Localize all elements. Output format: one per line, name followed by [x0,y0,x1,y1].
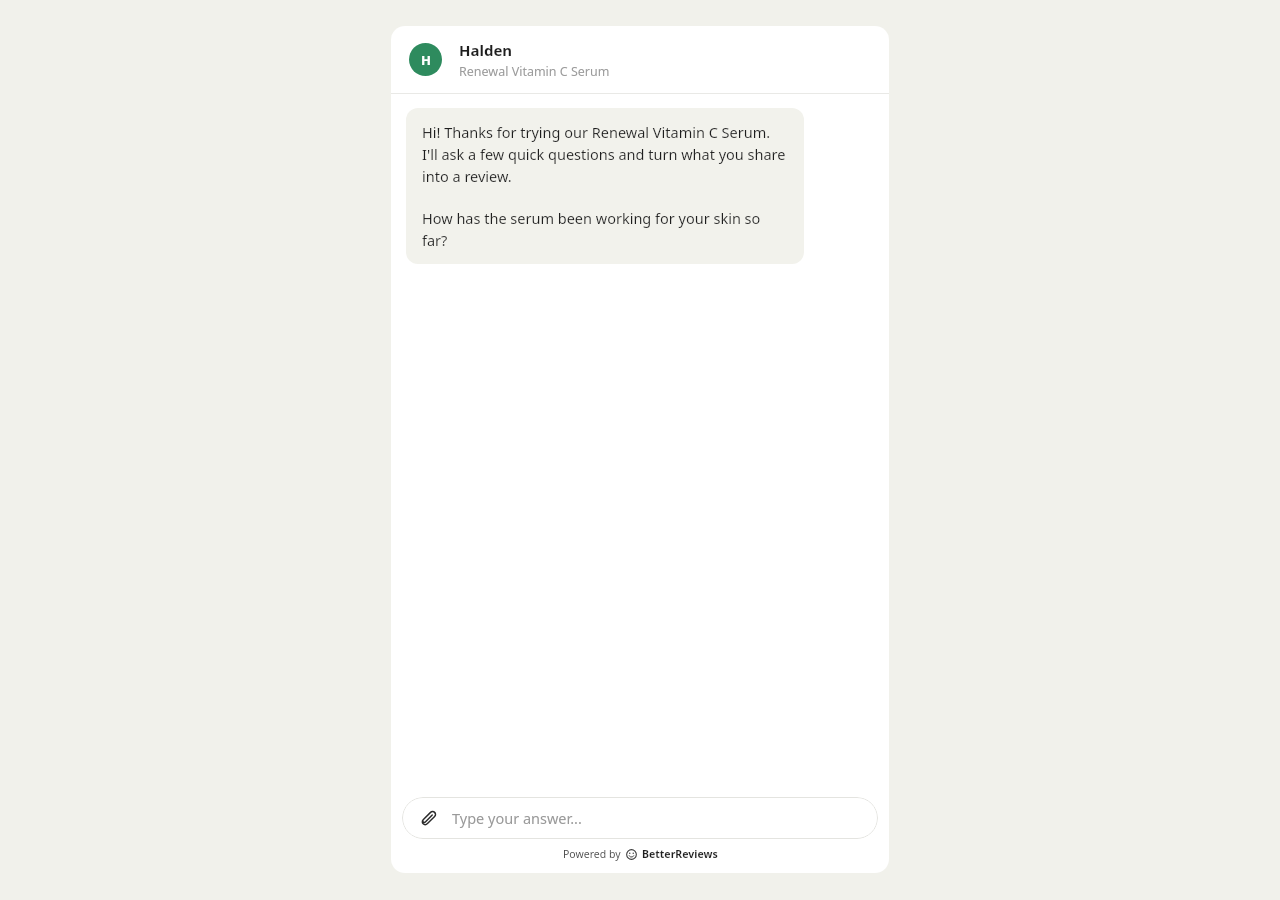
button[interactable]: Attach file [402,797,878,839]
staticText: How has the serum been working for your … [422,208,788,250]
staticText: Powered by [563,847,621,861]
staticText: Renewal Vitamin C Serum [459,63,610,80]
button[interactable]: H [391,26,889,93]
button[interactable]: Hi! Thanks for trying our Renewal Vitami… [406,108,804,264]
staticText: Type your answer... [452,808,582,828]
staticText: Hi! Thanks for trying our Renewal Vitami… [422,122,788,186]
staticText: BetterReviews [642,847,718,861]
button[interactable]: Attach file [418,808,438,828]
staticText: Halden [459,40,513,60]
button[interactable]: Powered by [391,839,889,869]
staticText: H [421,51,431,69]
